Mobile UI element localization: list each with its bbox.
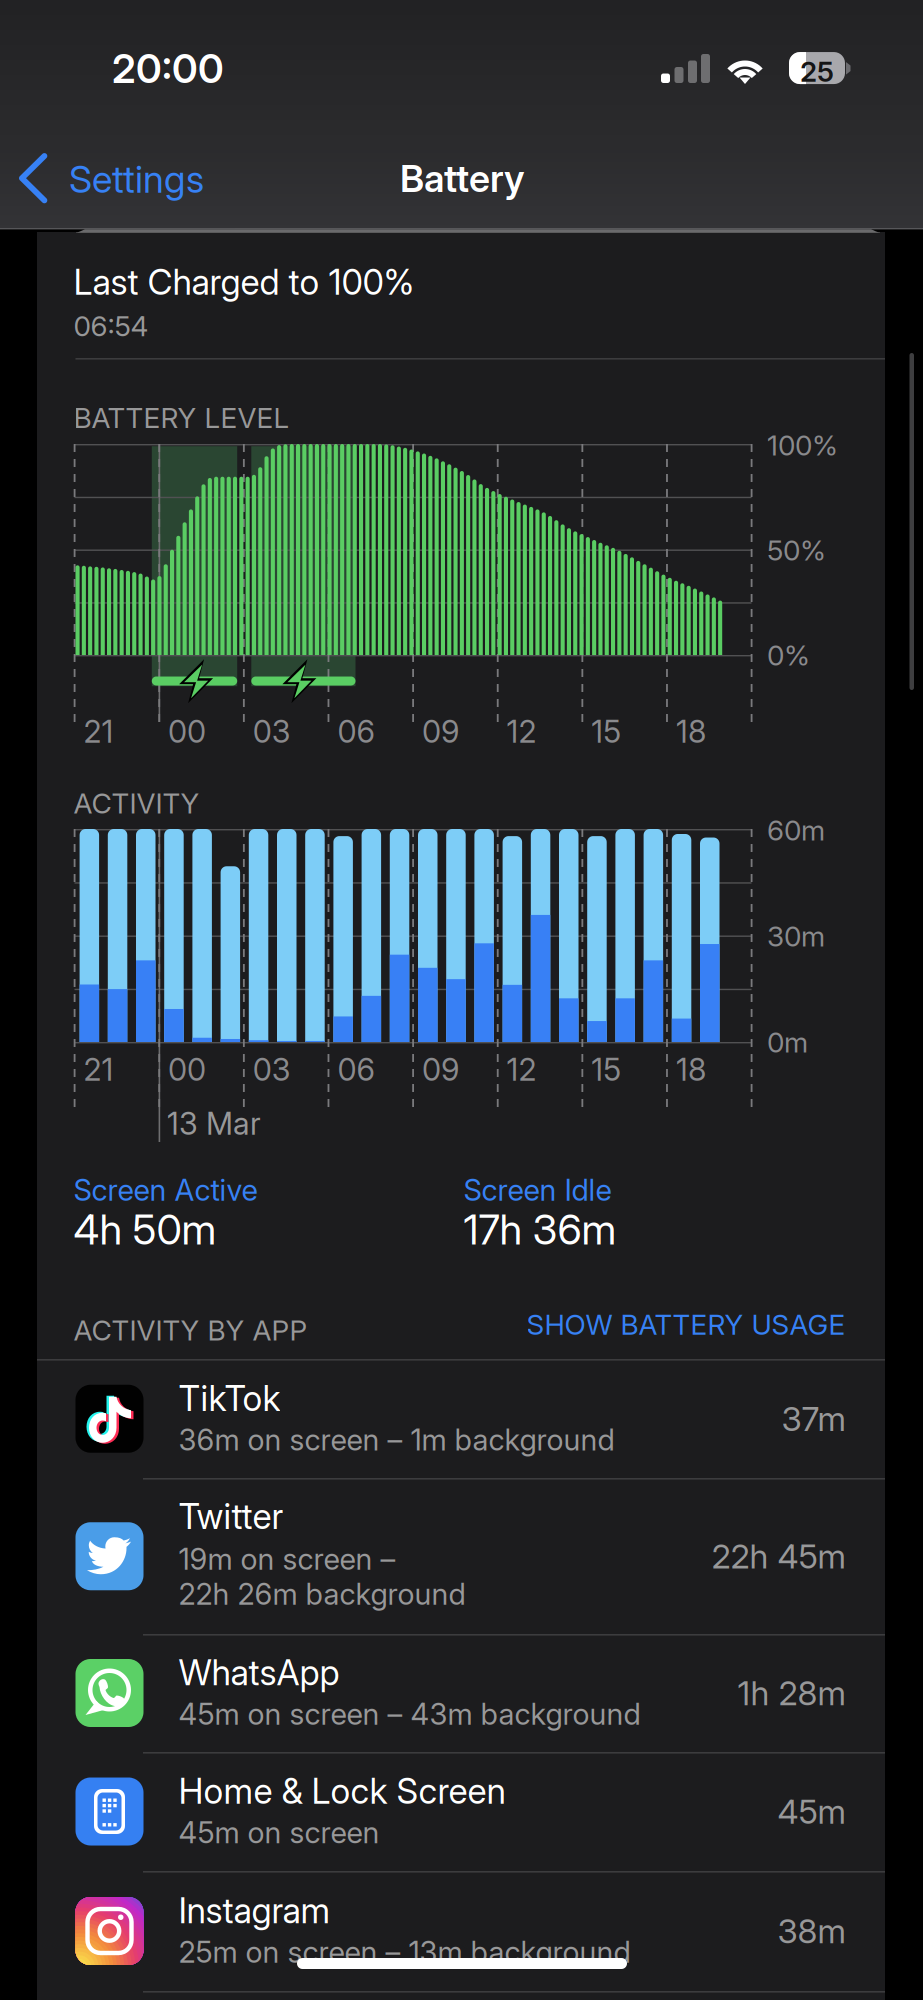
staticText: 13 Mar [167, 1105, 261, 1142]
staticText: 38m [777, 1911, 845, 1951]
staticText: 25m on screen – 13m background [178, 1934, 630, 1970]
staticText: SHOW BATTERY USAGE [526, 1307, 845, 1341]
button[interactable]: Settings [0, 140, 235, 229]
staticText: Settings [69, 157, 204, 202]
staticText: 03 [253, 1051, 291, 1088]
staticText: Last Charged to 100% [73, 261, 414, 303]
staticText: 18 [676, 1051, 706, 1088]
staticText: 06 [337, 713, 374, 750]
staticText: 15 [591, 1051, 621, 1088]
staticText: TikTok [178, 1377, 280, 1419]
staticText: Instagram [178, 1890, 330, 1931]
staticText: Battery [400, 156, 525, 201]
staticText: 45m [777, 1791, 845, 1832]
staticText: Home & Lock Screen [178, 1770, 505, 1812]
staticText: 21 [83, 713, 113, 750]
staticText: 60m [767, 813, 825, 847]
staticText: 20:00 [112, 44, 224, 93]
staticText: 45m on screen – 43m background [178, 1696, 640, 1732]
staticText: 30m [767, 919, 825, 953]
staticText: ACTIVITY BY APP [73, 1313, 307, 1347]
staticText: 15 [591, 713, 621, 750]
staticText: 36m on screen – 1m background [178, 1422, 614, 1458]
staticText: 03 [253, 713, 291, 750]
staticText: BATTERY LEVEL [73, 401, 289, 435]
staticText: 09 [422, 1051, 459, 1088]
button[interactable]: SHOW BATTERY USAGE [37, 1299, 845, 1349]
staticText: 09 [422, 713, 459, 750]
button[interactable]: Instagram [37, 1871, 885, 1991]
staticText: ACTIVITY [73, 786, 199, 820]
staticText: WhatsApp [178, 1652, 339, 1693]
staticText: 22h 45m [711, 1536, 845, 1576]
staticText: 25 [800, 55, 834, 89]
staticText: 12 [507, 713, 537, 750]
staticText: 17h 36m [463, 1204, 616, 1254]
staticText: 19m on screen – [178, 1541, 395, 1577]
staticText: 12 [507, 1051, 537, 1088]
staticText: 45m on screen [178, 1815, 379, 1850]
staticText: 100% [767, 428, 838, 462]
button[interactable]: TikTok [37, 1359, 885, 1478]
staticText: 00 [168, 1051, 206, 1088]
button[interactable]: Twitter [37, 1478, 885, 1634]
staticText: 00 [168, 713, 206, 750]
button[interactable]: Home & Lock Screen [37, 1752, 885, 1871]
button[interactable]: WhatsApp [37, 1634, 885, 1752]
staticText: Screen Active [73, 1172, 257, 1208]
staticText: Screen Idle [463, 1172, 611, 1208]
staticText: 06 [337, 1051, 374, 1088]
staticText: 1h 28m [737, 1673, 845, 1713]
staticText: Twitter [178, 1495, 283, 1537]
staticText: 06:54 [73, 309, 148, 343]
staticText: 18 [676, 713, 706, 750]
staticText: 4h 50m [73, 1204, 216, 1254]
staticText: 0m [767, 1025, 808, 1059]
staticText: 50% [767, 533, 826, 567]
staticText: 37m [781, 1399, 845, 1439]
staticText: 0% [767, 638, 810, 672]
staticText: 22h 26m background [178, 1576, 465, 1612]
staticText: 21 [83, 1051, 113, 1088]
